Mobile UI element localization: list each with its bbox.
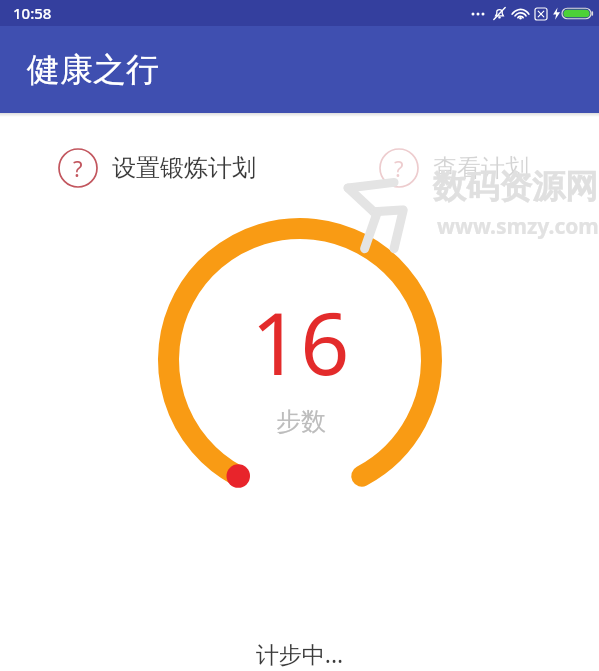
staticText: 健康之行 [27, 49, 159, 91]
staticText: 16 [251, 283, 350, 400]
staticText: 查看计划 [433, 153, 529, 183]
staticText: 数码资源网 [433, 166, 598, 208]
other: 设置锻炼计划 [379, 148, 419, 188]
button[interactable]: 步数进度 [157, 217, 443, 503]
staticText: 步数 [276, 406, 326, 437]
staticText: ? [73, 153, 83, 183]
staticText: 计步中... [0, 638, 599, 669]
other: 设置锻炼计划 [58, 148, 98, 188]
staticText: www.smzy.com [437, 212, 599, 241]
button[interactable]: 设置锻炼计划 [58, 148, 256, 188]
button[interactable]: 设置锻炼计划 [379, 148, 529, 188]
staticText: ? [394, 153, 404, 183]
staticText: 设置锻炼计划 [112, 153, 256, 183]
staticText: 10:58 [13, 3, 52, 23]
